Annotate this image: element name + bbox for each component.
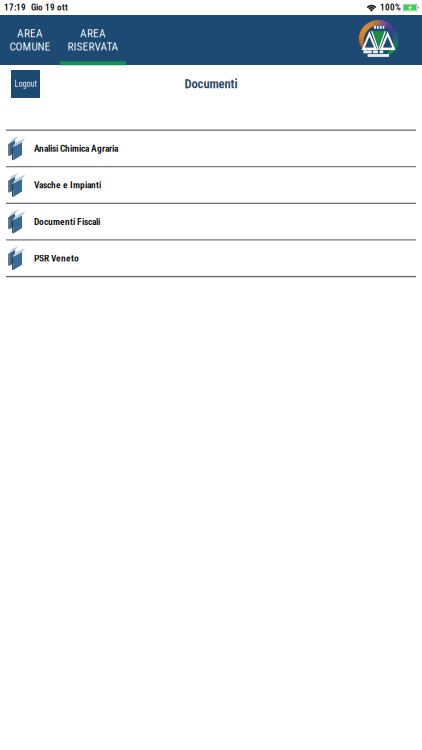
- staticText: AREA: [17, 27, 43, 40]
- staticText: COMUNE: [9, 40, 50, 53]
- button[interactable]: Logout: [11, 70, 40, 98]
- button[interactable]: Documenti Fiscali: [0, 204, 422, 239]
- staticText: 17:19: [4, 2, 26, 13]
- staticText: AREA: [80, 27, 106, 40]
- staticText: PSR Veneto: [34, 253, 79, 264]
- staticText: Logout: [14, 79, 36, 89]
- button[interactable]: PSR Veneto: [0, 241, 422, 276]
- button[interactable]: Vasche e Impianti: [0, 167, 422, 203]
- button[interactable]: AREA: [0, 15, 60, 65]
- staticText: Vasche e Impianti: [34, 180, 101, 191]
- staticText: Documenti Fiscali: [34, 216, 100, 227]
- staticText: 100%: [380, 2, 401, 13]
- button[interactable]: Analisi Chimica Agraria: [0, 131, 422, 166]
- staticText: Gio 19 ott: [31, 2, 68, 13]
- button[interactable]: AREA: [60, 15, 126, 65]
- staticText: RISERVATA: [67, 40, 118, 53]
- staticText: Analisi Chimica Agraria: [34, 143, 118, 154]
- staticText: Documenti: [184, 77, 237, 91]
